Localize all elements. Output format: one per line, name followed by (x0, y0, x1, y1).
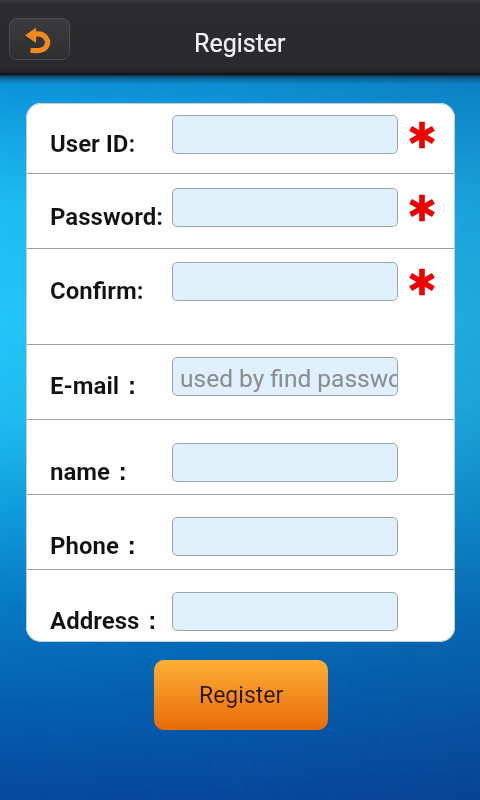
staticText: Address： (50, 606, 164, 636)
staticText: Confirm: (50, 277, 144, 305)
staticText: Phone： (50, 531, 143, 561)
button[interactable]: Password: (26, 174, 455, 248)
button[interactable]: Confirm: (26, 249, 455, 344)
staticText: name： (50, 457, 135, 487)
button[interactable]: Phone： (26, 495, 455, 569)
button[interactable]: User ID: (26, 103, 455, 173)
button[interactable]: name： (26, 420, 455, 494)
staticText: Register (199, 682, 284, 709)
button[interactable]: Register (154, 660, 328, 730)
staticText: Password: (50, 203, 163, 231)
staticText: User ID: (50, 130, 136, 158)
button[interactable]: Back (9, 18, 70, 60)
staticText: E-mail： (50, 371, 144, 401)
staticText: Register (194, 29, 286, 58)
staticText: used by find password (180, 364, 398, 393)
button[interactable]: E-mail： (26, 345, 455, 419)
button[interactable]: Address： (26, 570, 455, 642)
